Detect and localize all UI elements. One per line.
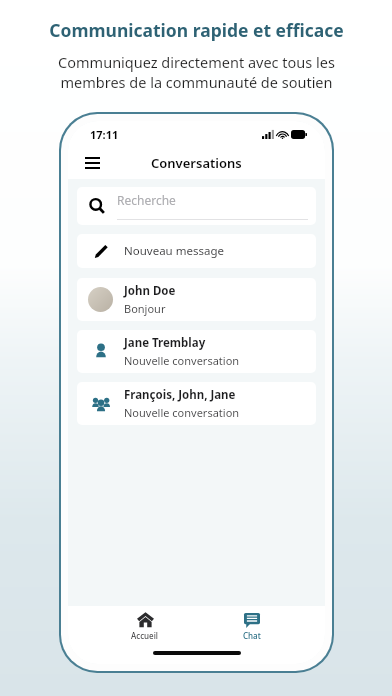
button[interactable]: Nouveau message	[77, 234, 316, 268]
button[interactable]: Recherche	[77, 187, 316, 225]
staticText: Communiquez directement avec tous les me…	[58, 52, 335, 93]
staticText: Jane Tremblay	[124, 335, 206, 351]
button[interactable]: Chat	[235, 610, 269, 643]
staticText: Nouvelle conversation	[124, 405, 240, 420]
staticText: Nouveau message	[124, 243, 224, 259]
staticText: Chat	[243, 630, 261, 641]
staticText: Accueil	[131, 630, 159, 641]
staticText: Bonjour	[124, 301, 166, 316]
staticText: Nouvelle conversation	[124, 353, 240, 368]
button[interactable]: François, John, Jane	[77, 382, 316, 425]
staticText: Conversations	[151, 154, 242, 172]
staticText: 17:11	[90, 127, 119, 142]
button[interactable]: Jane Tremblay	[77, 330, 316, 373]
staticText: François, John, Jane	[124, 387, 236, 403]
button[interactable]: Accueil	[123, 609, 167, 643]
button[interactable]: John Doe	[77, 278, 316, 321]
staticText: John Doe	[124, 283, 176, 299]
button[interactable]: Menu	[78, 149, 106, 177]
staticText: Recherche	[117, 192, 176, 208]
staticText: Communication rapide et efficace	[49, 18, 344, 42]
